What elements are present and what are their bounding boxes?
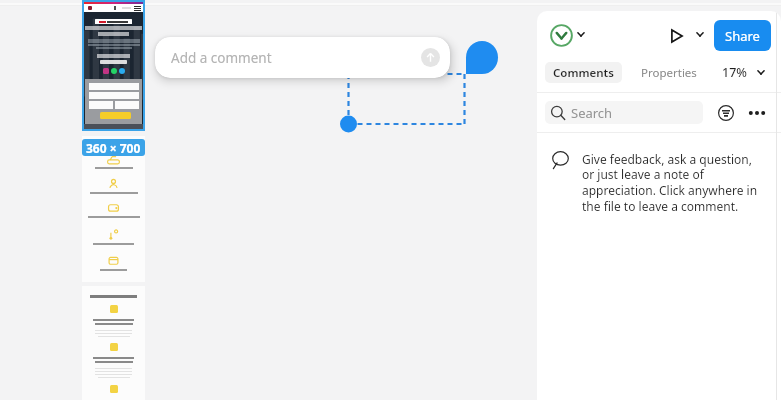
button[interactable]: Search: [545, 101, 703, 124]
staticText: Search: [571, 104, 613, 122]
button[interactable]: Present: [671, 29, 683, 43]
button[interactable]: Comment pin: [466, 41, 498, 74]
button[interactable]: Filter: [718, 105, 734, 121]
staticText: Properties: [641, 65, 697, 81]
staticText: Add a comment: [171, 49, 272, 67]
button[interactable]: Account menu: [576, 30, 586, 39]
staticText: 17%: [722, 64, 747, 81]
button[interactable]: Comments: [545, 62, 622, 83]
button[interactable]: Present options: [695, 30, 705, 39]
button[interactable]: 17%: [717, 62, 771, 83]
staticText: 360 × 700: [86, 140, 141, 156]
button[interactable]: More options: [747, 105, 767, 121]
button[interactable]: Share: [714, 20, 771, 51]
button[interactable]: Properties: [632, 62, 706, 83]
button[interactable]: Send comment: [421, 48, 440, 67]
staticText: Comments: [553, 65, 614, 81]
staticText: Give feedback, ask a question, or just l…: [582, 151, 760, 215]
button[interactable]: Account: [550, 24, 573, 47]
staticText: Share: [725, 27, 760, 45]
button[interactable]: Add a comment: [155, 37, 450, 78]
